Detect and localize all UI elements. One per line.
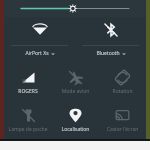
staticText: AirPort Xs [25,50,49,57]
button[interactable]: Mode avion [52,63,99,101]
staticText: Mode avion [53,88,98,95]
staticText: Localisation [53,126,98,133]
button[interactable]: Bluetooth [75,47,146,60]
button[interactable]: Wi-Fi [4,17,75,43]
button[interactable]: Brightness [4,0,146,17]
button[interactable]: ROGERS [4,63,52,101]
staticText: Lampe de poche [5,126,51,133]
staticText: Rotation automatique [100,88,145,95]
staticText: Bluetooth [96,50,120,57]
button[interactable]: Lampe de poche [4,101,52,139]
staticText: Caster l'écran [100,126,145,133]
button[interactable]: Rotation automatique [99,63,146,101]
button[interactable]: Localisation [52,101,99,139]
button[interactable]: Bluetooth [75,17,146,43]
staticText: ROGERS [5,88,51,95]
button[interactable]: AirPort Xs [4,47,75,60]
button[interactable]: Caster l'écran [99,101,146,139]
